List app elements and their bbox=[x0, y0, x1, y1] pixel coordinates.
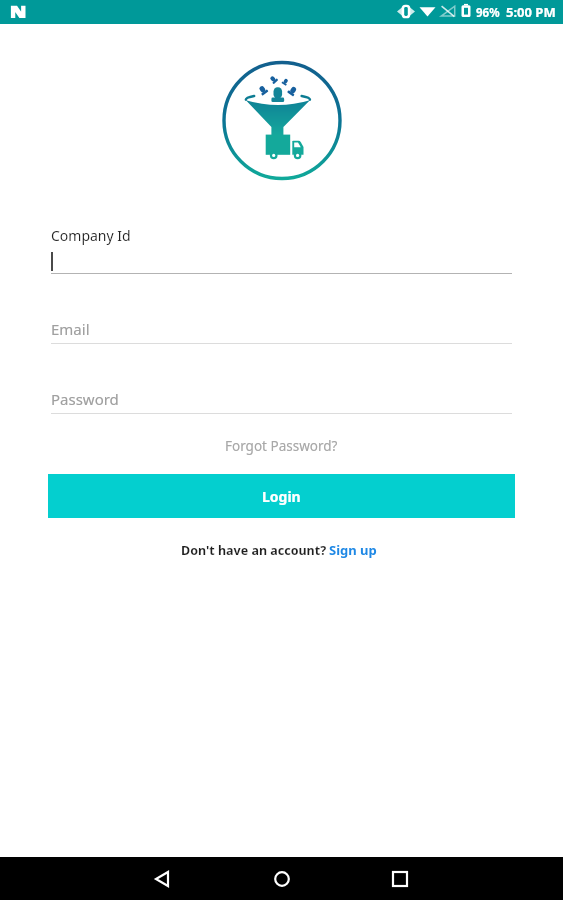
staticText: Password bbox=[51, 389, 119, 409]
staticText: Don't have an account? bbox=[181, 542, 327, 559]
staticText: Email bbox=[51, 319, 90, 339]
button[interactable]: Back bbox=[133, 857, 191, 900]
button[interactable]: Email bbox=[51, 317, 512, 344]
staticText: Login bbox=[262, 487, 301, 506]
button[interactable]: Recent apps bbox=[371, 857, 429, 900]
staticText: Sign up bbox=[329, 541, 377, 559]
button[interactable]: Sign up bbox=[329, 541, 377, 559]
button[interactable]: Password bbox=[51, 387, 512, 414]
staticText: 96% bbox=[476, 5, 500, 21]
button[interactable]: Company Id bbox=[51, 224, 512, 274]
button[interactable]: Forgot Password? bbox=[217, 434, 346, 458]
staticText: 5:00 PM bbox=[506, 3, 556, 21]
button[interactable]: Login bbox=[48, 474, 515, 518]
staticText: Forgot Password? bbox=[225, 437, 338, 455]
button[interactable]: Home bbox=[253, 857, 311, 900]
staticText: Company Id bbox=[51, 226, 131, 245]
